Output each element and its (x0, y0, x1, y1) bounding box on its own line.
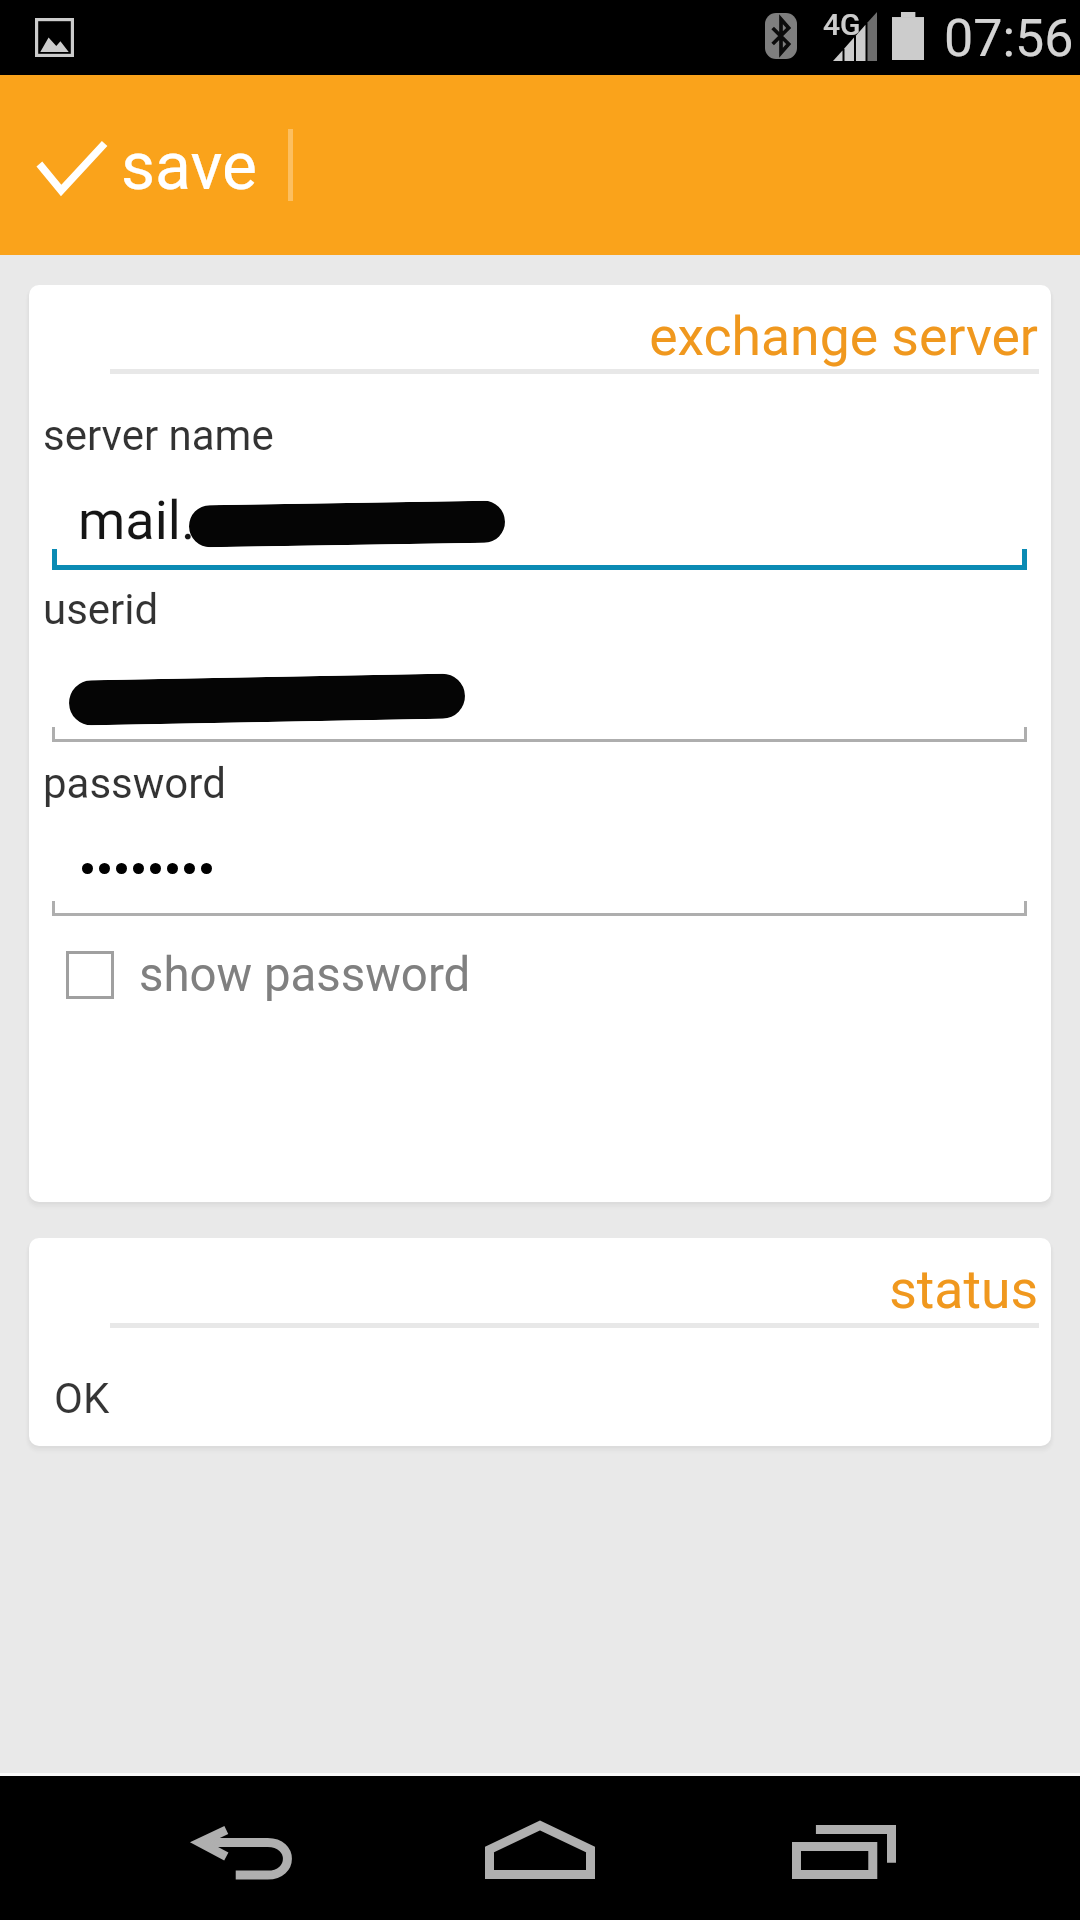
staticText: exchange server (29, 305, 1038, 368)
button[interactable]: Back (176, 1802, 324, 1894)
staticText: show password (139, 947, 471, 1003)
button[interactable]: show password (59, 945, 471, 1005)
staticText: userid (43, 585, 159, 634)
staticText: 07:56 (944, 8, 1074, 69)
staticText: OK (54, 1374, 110, 1423)
staticText: mail. (78, 489, 196, 552)
staticText: save (121, 128, 258, 205)
button[interactable]: Recent apps (772, 1801, 920, 1893)
button[interactable]: save (0, 75, 288, 255)
staticText: 4G (823, 7, 861, 42)
button[interactable]: Home (466, 1796, 614, 1888)
staticText: status (29, 1258, 1038, 1321)
staticText: password (43, 759, 226, 808)
staticText: server name (43, 411, 274, 460)
